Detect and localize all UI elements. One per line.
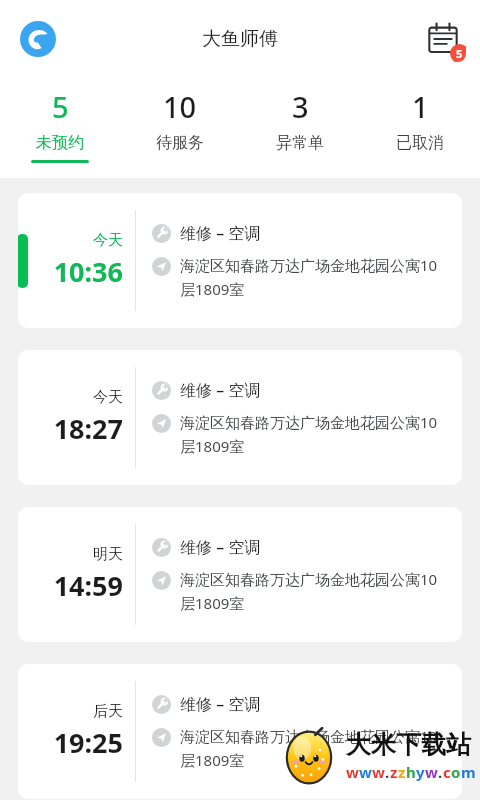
staticText: 今天 [93,231,123,250]
button[interactable]: 明天 [18,507,462,642]
staticText: z [390,762,398,782]
staticText: o [451,762,461,782]
staticText: 维修 – 空调 [180,536,261,558]
button[interactable]: 今天 [18,350,462,485]
button[interactable]: 3 [240,78,360,178]
staticText: 大米下载站 [346,729,471,760]
staticText: . [438,762,443,782]
staticText: z [398,762,406,782]
staticText: y [416,762,425,782]
button[interactable]: App logo [14,15,62,63]
staticText: w [372,762,385,782]
staticText: 海淀区知春路万达广场金地花园公寓10层1809室 [180,726,450,771]
staticText: 明天 [93,545,123,564]
staticText: 今天 [93,388,123,407]
staticText: w [359,762,372,782]
staticText: 海淀区知春路万达广场金地花园公寓10层1809室 [180,569,450,614]
staticText: 3 [292,87,309,126]
staticText: m [461,762,476,782]
button[interactable]: 1 [360,78,480,178]
staticText: 后天 [93,702,123,721]
staticText: w [425,762,438,782]
staticText: 维修 – 空调 [180,222,261,244]
staticText: 5 [52,87,69,126]
staticText: 已取消 [396,133,444,153]
staticText: 待服务 [156,133,204,153]
staticText: c [443,762,451,782]
staticText: 维修 – 空调 [180,379,261,401]
button[interactable]: Orders [420,16,466,62]
staticText: 维修 – 空调 [180,693,261,715]
staticText: w [346,762,359,782]
staticText: 5 [456,46,463,61]
staticText: 10 [163,87,197,126]
staticText: 1 [412,87,429,126]
staticText: 海淀区知春路万达广场金地花园公寓10层1809室 [180,255,450,300]
staticText: . [385,762,390,782]
button[interactable]: 今天 [18,193,462,328]
button[interactable]: 后天 [18,664,462,799]
button[interactable]: 10 [120,78,240,178]
staticText: 10:36 [53,253,123,290]
staticText: 异常单 [276,133,324,153]
staticText: 大鱼师傅 [202,27,278,51]
staticText: 未预约 [36,133,84,153]
staticText: 海淀区知春路万达广场金地花园公寓10层1809室 [180,412,450,457]
staticText: 18:27 [53,410,123,447]
staticText: 19:25 [53,724,123,761]
staticText: h [406,762,416,782]
staticText: 14:59 [53,567,123,604]
button[interactable]: 5 [0,78,120,178]
